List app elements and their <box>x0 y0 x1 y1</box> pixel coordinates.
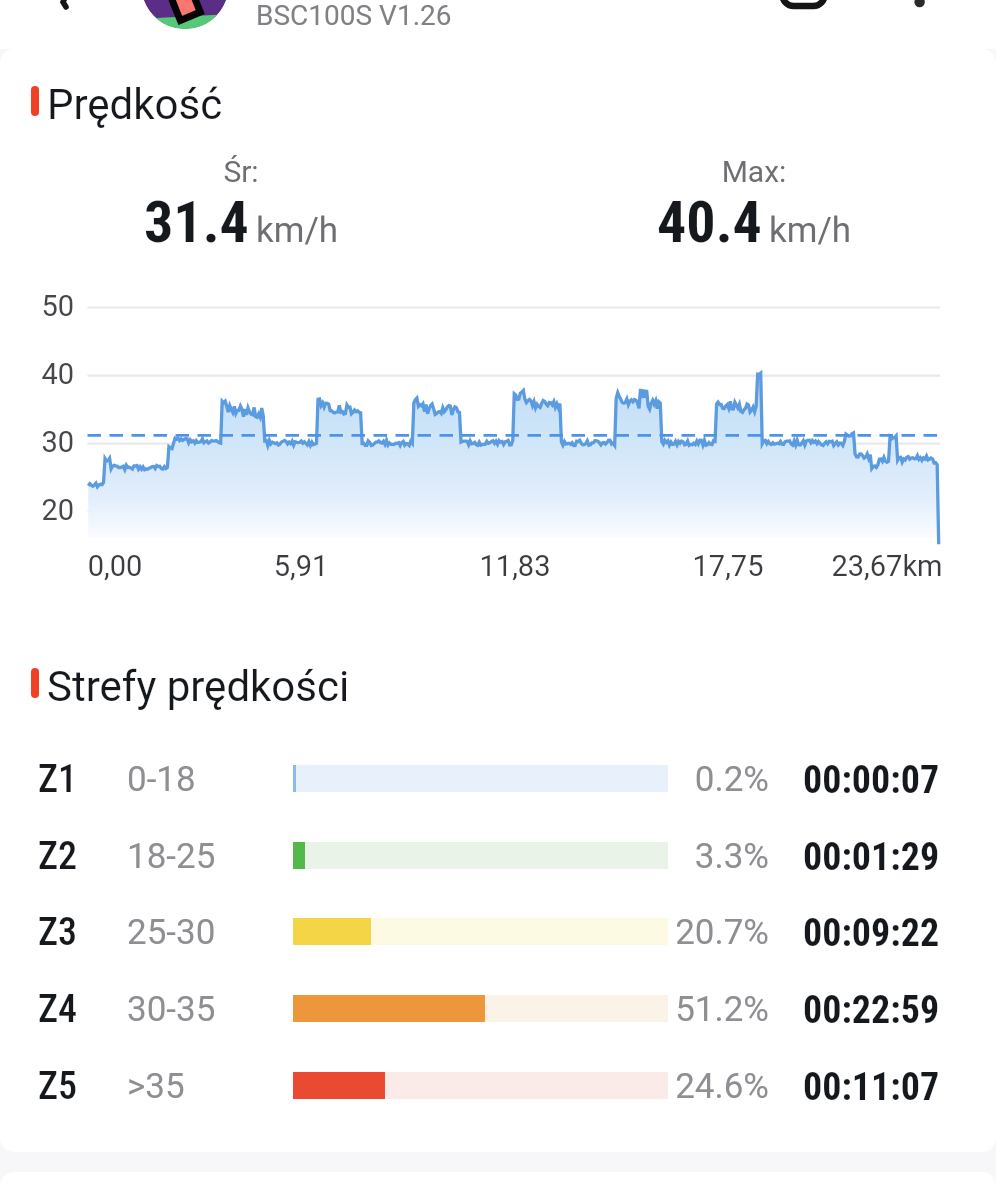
staticText: 5,91 <box>201 549 401 583</box>
button[interactable]: Z3 <box>0 893 996 970</box>
staticText: BSC100S V1.26 <box>256 0 452 32</box>
staticText: 17,75 <box>628 549 828 583</box>
staticText: 0-18 <box>127 759 196 800</box>
staticText: 51.2% <box>569 989 769 1030</box>
button[interactable]: Device <box>782 0 826 10</box>
staticText: 20 <box>10 493 74 527</box>
staticText: 00:01:29 <box>803 835 940 880</box>
staticText: Strefy prędkości <box>47 662 350 711</box>
staticText: 30-35 <box>127 989 216 1030</box>
staticText: 00:00:07 <box>803 758 940 803</box>
button[interactable]: Profile <box>141 0 229 30</box>
button[interactable]: Z5 <box>0 1047 996 1124</box>
staticText: 20.7% <box>569 912 769 953</box>
staticText: 40.4 <box>657 188 762 256</box>
staticText: 11,83 <box>415 549 615 583</box>
staticText: Z1 <box>38 757 78 802</box>
button[interactable]: Z4 <box>0 970 996 1047</box>
staticText: km/h <box>256 210 339 251</box>
staticText: 30 <box>10 425 74 459</box>
button[interactable]: Z2 <box>0 817 996 894</box>
staticText: km/h <box>769 210 852 251</box>
staticText: 00:09:22 <box>803 911 940 956</box>
staticText: 18-25 <box>127 836 216 877</box>
staticText: 3.3% <box>569 836 769 877</box>
staticText: Prędkość <box>47 80 223 129</box>
staticText: Z3 <box>38 910 78 955</box>
button[interactable]: More options <box>910 0 930 10</box>
staticText: Z2 <box>38 834 78 879</box>
staticText: 0,00 <box>15 549 215 583</box>
button[interactable]: Z1 <box>0 740 996 817</box>
staticText: 00:22:59 <box>803 988 940 1033</box>
staticText: 40 <box>10 357 74 391</box>
staticText: Max: <box>504 154 996 189</box>
staticText: 50 <box>10 289 74 323</box>
staticText: Z5 <box>38 1064 78 1109</box>
staticText: Z4 <box>38 987 78 1032</box>
staticText: 23,67km <box>787 549 987 583</box>
staticText: 25-30 <box>127 912 216 953</box>
staticText: Śr: <box>0 154 491 189</box>
staticText: 0.2% <box>569 759 769 800</box>
button[interactable]: Back <box>44 0 84 12</box>
staticText: >35 <box>127 1066 185 1107</box>
staticText: 00:11:07 <box>803 1065 940 1110</box>
staticText: 24.6% <box>569 1066 769 1107</box>
staticText: 31.4 <box>144 188 249 256</box>
